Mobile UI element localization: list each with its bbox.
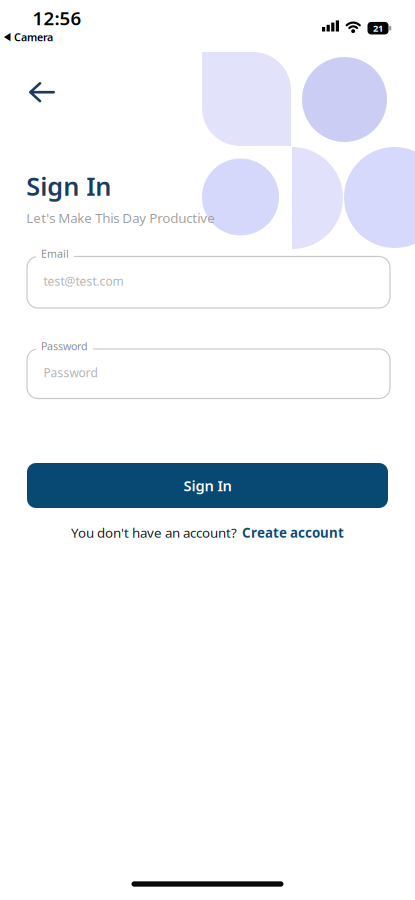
staticText: Email [41, 246, 69, 261]
button[interactable]: Back to Camera [4, 30, 53, 44]
staticText: Camera [14, 30, 53, 44]
staticText: 12:56 [32, 6, 81, 30]
staticText: Sign In [26, 169, 111, 203]
button[interactable]: Back [29, 82, 55, 103]
staticText: 21 [373, 22, 383, 34]
staticText: Let's Make This Day Productive [26, 209, 215, 227]
button[interactable]: Password [27, 349, 390, 398]
staticText: You don't have an account? [71, 524, 237, 541]
button[interactable]: Sign In [27, 463, 388, 508]
staticText: Create account [242, 524, 344, 541]
button[interactable]: Create account [242, 524, 344, 541]
staticText: Sign In [183, 476, 231, 495]
staticText: Password [41, 339, 88, 353]
staticText: test@test.com [43, 273, 123, 289]
button[interactable]: Email [27, 256, 390, 308]
staticText: Password [43, 365, 97, 381]
